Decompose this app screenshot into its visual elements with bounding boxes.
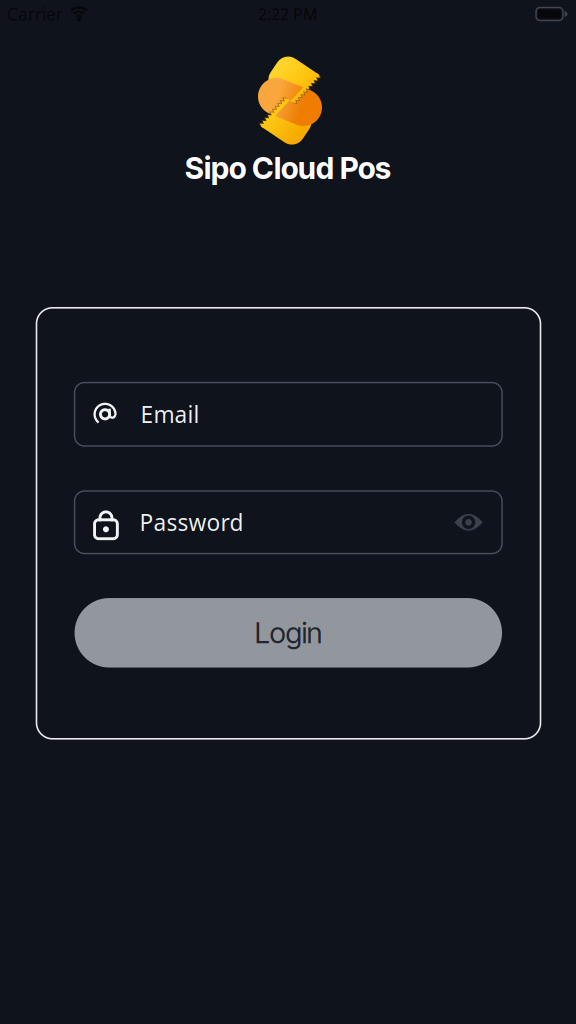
staticText: Password: [140, 507, 244, 537]
button[interactable]: Login: [75, 598, 502, 667]
staticText: Email: [141, 399, 200, 429]
button[interactable]: Password: [75, 491, 502, 553]
staticText: 2:22 PM: [258, 3, 318, 25]
staticText: Login: [255, 615, 322, 650]
staticText: Carrier: [7, 2, 63, 25]
staticText: Sipo Cloud Pos: [185, 150, 391, 186]
button[interactable]: Email: [75, 383, 502, 446]
